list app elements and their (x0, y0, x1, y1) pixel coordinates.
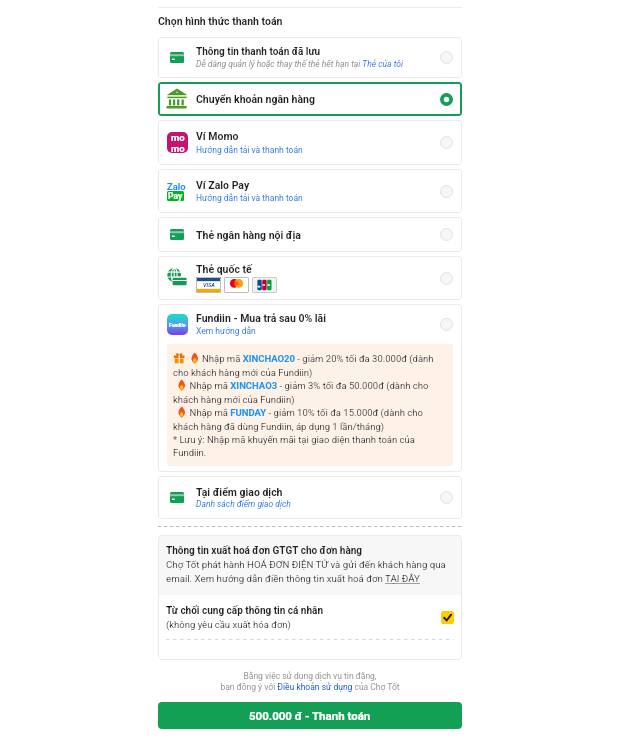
staticText: Hướng dẫn tải và thanh toán (196, 145, 303, 155)
staticText: Xem hướng dẫn (196, 326, 256, 336)
staticText: (không yêu cầu xuất hóa đơn) (166, 619, 291, 630)
staticText: bạn đồng ý với Điều khoản sử dụng của Ch… (158, 682, 462, 692)
button[interactable]: Thẻ quốc tế (158, 256, 462, 300)
staticText: Thẻ quốc tế (196, 263, 252, 275)
button[interactable]: Từ chối cung cấp thông tin cá nhân (441, 611, 454, 624)
button[interactable]: Chuyển khoản ngân hàng (158, 82, 462, 116)
staticText: VISA (203, 282, 215, 288)
staticText: 500.000 đ - Thanh toán (249, 709, 371, 722)
staticText: Bằng việc sử dụng dịch vụ tin đăng, (158, 671, 462, 681)
staticText: Thẻ ngân hàng nội địa (196, 229, 301, 241)
button[interactable]: Fundiin - Mua trả sau 0% lãi (158, 304, 462, 472)
staticText: Ví Zalo Pay (196, 179, 250, 191)
button[interactable]: Ví Zalo Pay (158, 169, 462, 213)
button[interactable]: Thông tin thanh toán đã lưu (158, 37, 462, 78)
staticText: Hướng dẫn tải và thanh toán (196, 193, 303, 203)
staticText: Chuyển khoản ngân hàng (196, 93, 315, 105)
staticText: **Nhập mã XINCHAO20 - giảm 20% tối đa 30… (173, 352, 445, 458)
staticText: Từ chối cung cấp thông tin cá nhân (166, 605, 324, 617)
staticText: Pay (168, 191, 183, 201)
staticText: mo (171, 143, 185, 153)
staticText: Thông tin xuất hoá đơn GTGT cho đơn hàng (166, 545, 363, 557)
button[interactable]: Tại điểm giao dịch (158, 476, 462, 519)
staticText: Chọn hình thức thanh toán (158, 15, 283, 27)
staticText: Fundiin (169, 322, 186, 328)
staticText: Dễ dàng quản lý hoặc thay thế thẻ hết hạ… (196, 59, 403, 69)
staticText: Thông tin thanh toán đã lưu (196, 46, 321, 58)
staticText: Fundiin - Mua trả sau 0% lãi (196, 312, 326, 324)
staticText: Tại điểm giao dịch (196, 486, 283, 498)
button[interactable]: Ví Momo (158, 120, 462, 165)
staticText: Chợ Tốt phát hành HOÁ ĐƠN ĐIỆN TỬ và gửi… (166, 559, 456, 585)
staticText: mo (171, 132, 185, 143)
button[interactable]: 500.000 đ - Thanh toán (158, 702, 462, 729)
staticText: Zalo (167, 181, 186, 190)
staticText: Ví Momo (196, 130, 239, 142)
button[interactable]: Thẻ ngân hàng nội địa (158, 217, 462, 252)
staticText: Danh sách điểm giao dịch (196, 499, 291, 509)
